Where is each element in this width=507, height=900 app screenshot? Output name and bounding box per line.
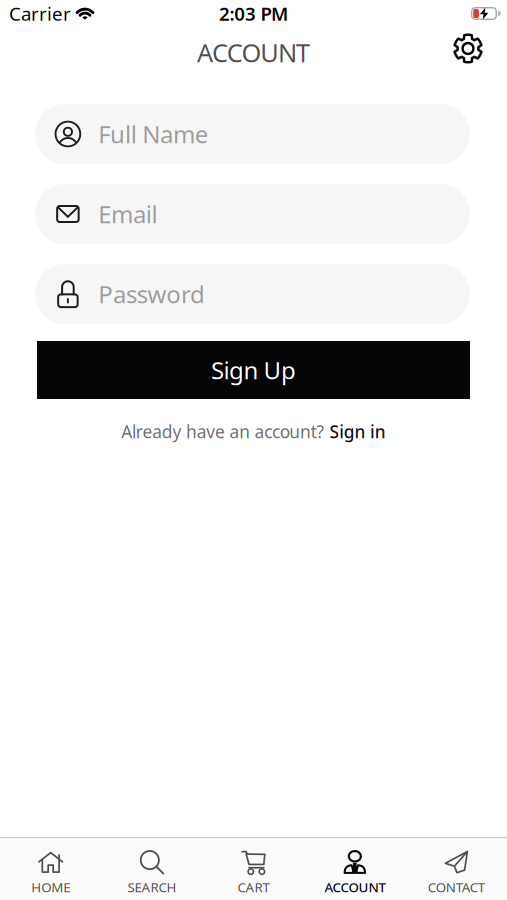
staticText: ACCOUNT	[197, 36, 310, 69]
staticText: CONTACT	[428, 878, 485, 896]
staticText: CART	[237, 878, 269, 896]
button[interactable]: Password	[35, 264, 470, 324]
button[interactable]: Full Name	[35, 104, 470, 164]
staticText: Password	[98, 278, 205, 310]
staticText: Already have an account?	[121, 420, 324, 443]
button[interactable]: Sign in	[329, 420, 386, 443]
button[interactable]: CART	[203, 851, 304, 896]
button[interactable]: CONTACT	[406, 851, 507, 896]
staticText: Sign in	[329, 420, 386, 443]
button[interactable]: Settings	[454, 33, 482, 63]
staticText: Email	[98, 198, 157, 230]
button[interactable]: Sign Up	[37, 341, 470, 399]
staticText: 2:03 PM	[219, 1, 288, 26]
staticText: ACCOUNT	[324, 878, 385, 896]
button[interactable]: SEARCH	[101, 851, 203, 896]
staticText: Carrier	[9, 1, 71, 26]
staticText: Sign Up	[211, 354, 296, 386]
staticText: SEARCH	[128, 878, 177, 896]
staticText: Full Name	[98, 118, 209, 150]
button[interactable]: Email	[35, 184, 470, 244]
button[interactable]: HOME	[0, 851, 101, 896]
staticText: HOME	[31, 878, 70, 896]
button[interactable]: ACCOUNT	[304, 851, 406, 896]
